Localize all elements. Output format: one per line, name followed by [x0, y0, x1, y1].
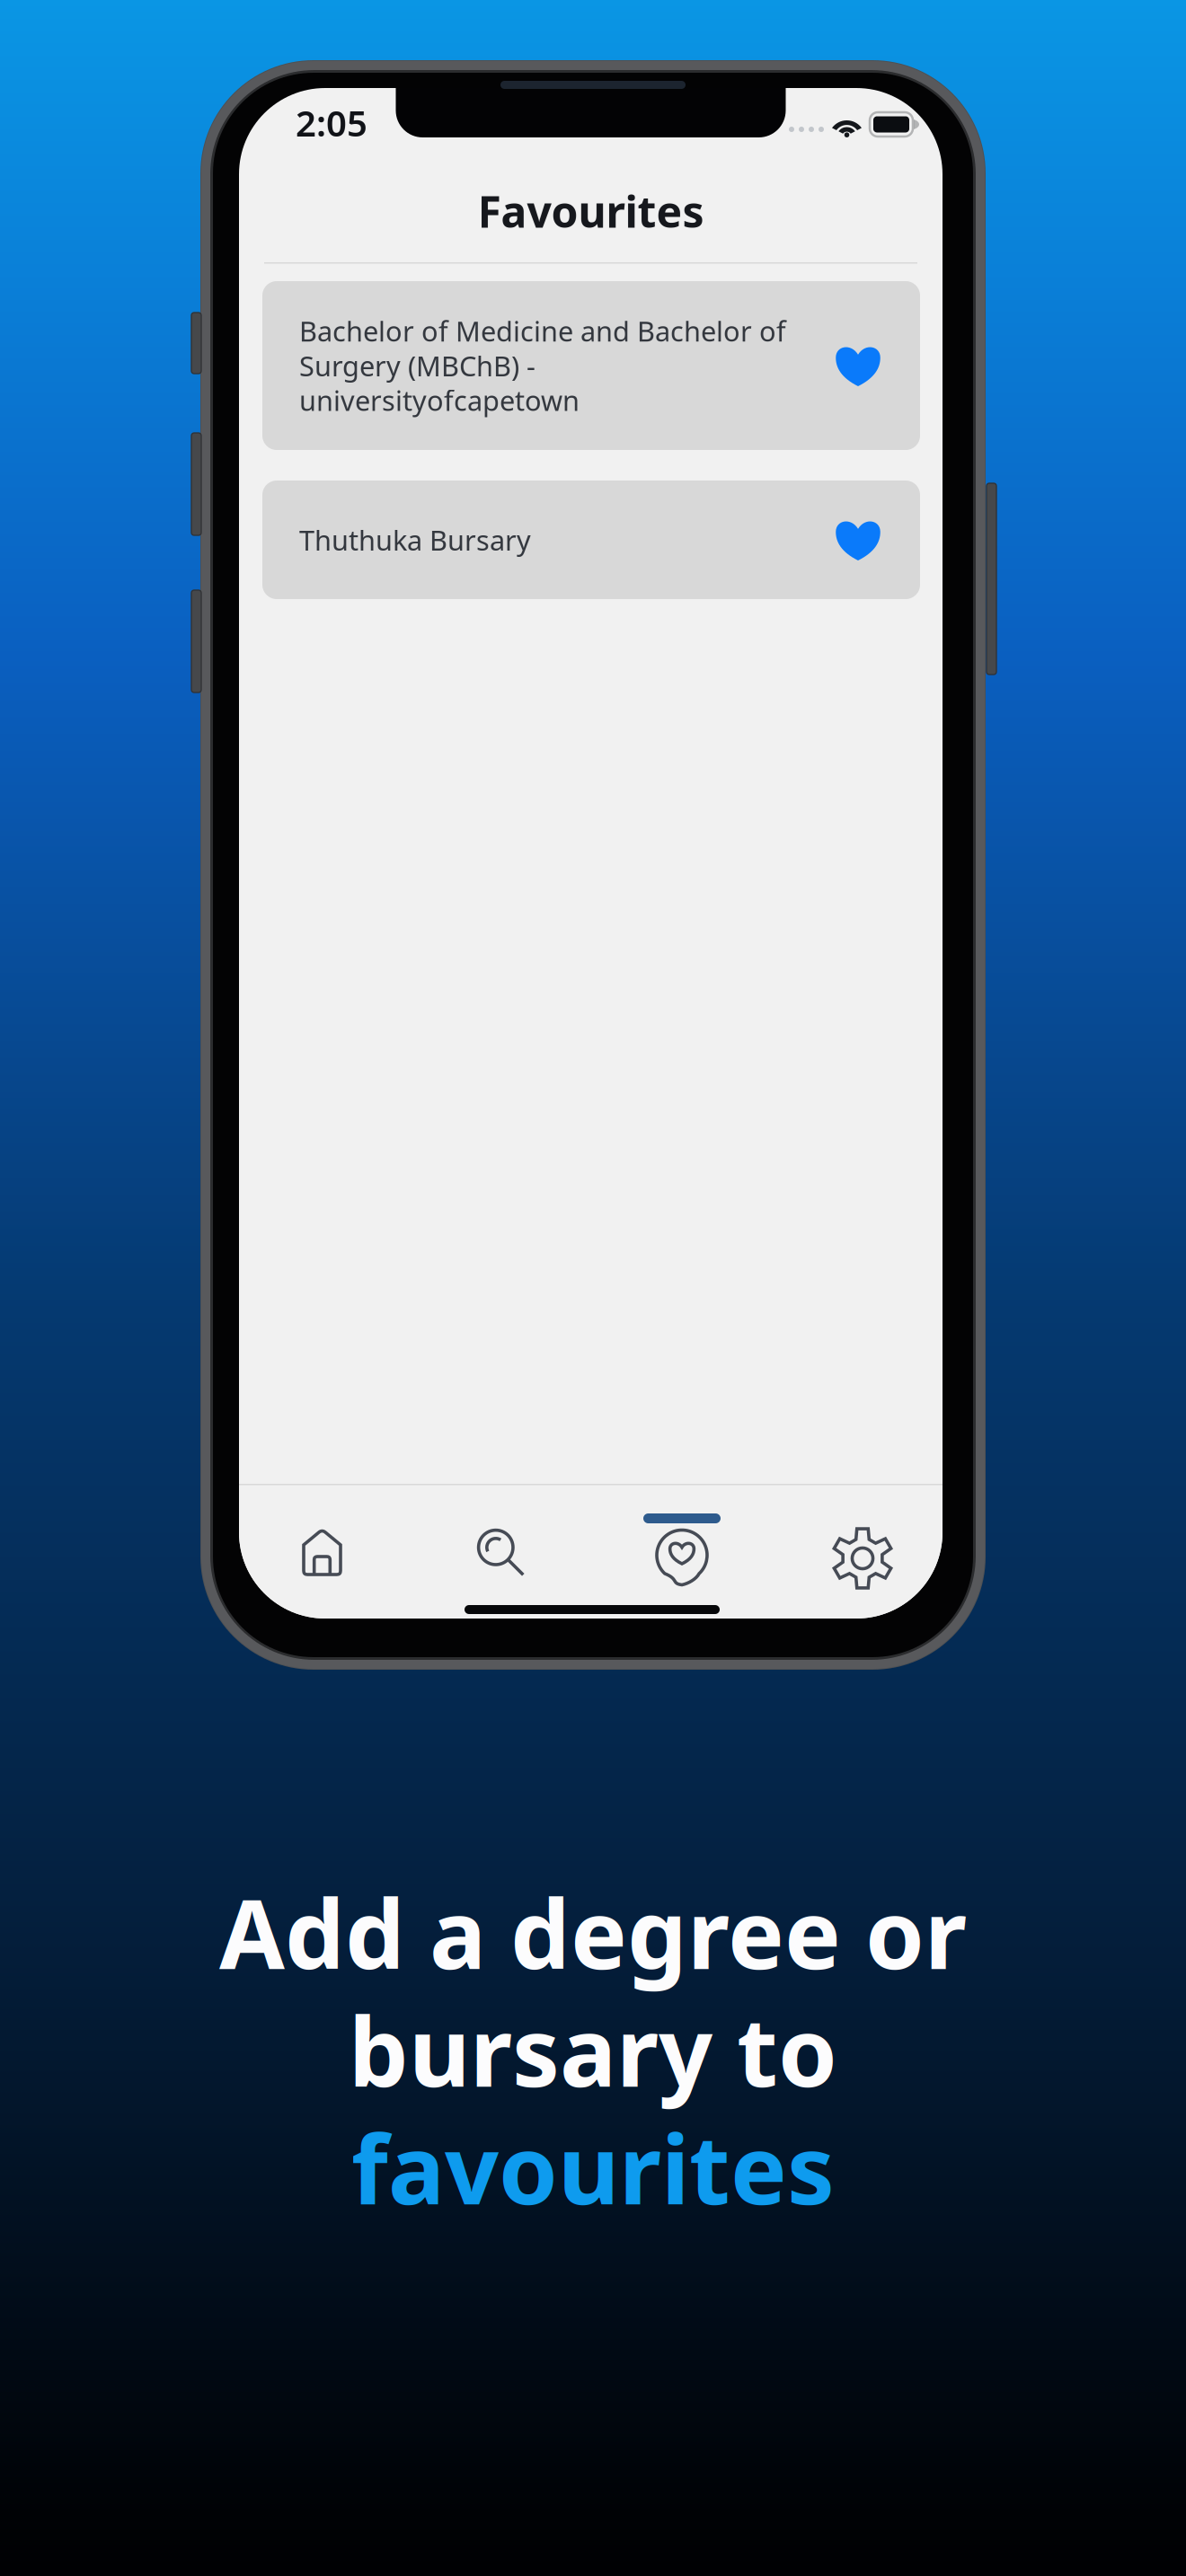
staticText: Add a degree or: [219, 1870, 967, 1995]
button[interactable]: Bachelor of Medicine and Bachelor of Sur…: [262, 281, 920, 450]
staticText: favourites: [351, 2105, 835, 2231]
button[interactable]: Thuthuka Bursary: [262, 481, 920, 599]
staticText: Bachelor of Medicine and Bachelor of Sur…: [299, 312, 786, 419]
staticText: Favourites: [478, 182, 704, 240]
button[interactable]: Search: [419, 1485, 584, 1619]
button[interactable]: Home: [239, 1485, 405, 1619]
button[interactable]: Favourites: [599, 1485, 765, 1619]
staticText: bursary to: [349, 1987, 837, 2113]
staticText: 2:05: [296, 99, 367, 146]
staticText: Thuthuka Bursary: [299, 521, 531, 558]
button[interactable]: Settings: [780, 1485, 945, 1619]
